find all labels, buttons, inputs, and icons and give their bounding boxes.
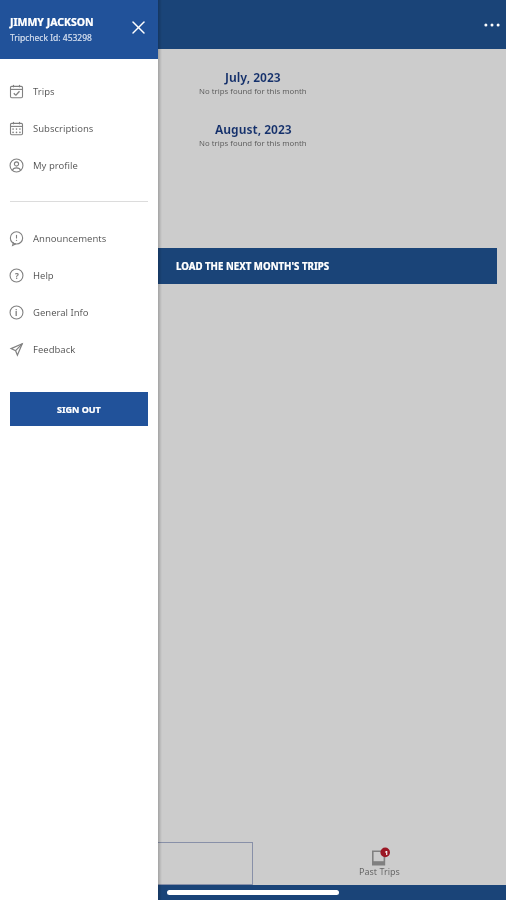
staticText: Trips [33,85,55,98]
staticText: General Info [33,306,89,319]
button[interactable]: Announcements [0,220,158,257]
staticText: July, 2023 [225,69,281,85]
button[interactable]: Trips [0,842,253,885]
button[interactable]: Feedback [0,331,158,368]
staticText: LOAD THE NEXT MONTH'S TRIPS [176,260,330,273]
button[interactable]: ? [0,257,158,294]
button[interactable]: Close drawer [126,15,150,39]
staticText: 1 [385,850,388,857]
button[interactable]: Trips [0,73,158,110]
button[interactable]: i [0,294,158,331]
staticText: Feedback [33,343,76,356]
staticText: JIMMY JACKSON [10,15,94,29]
staticText: Subscriptions [33,122,94,135]
button[interactable]: LOAD THE NEXT MONTH'S TRIPS [9,248,497,284]
staticText: Help [33,269,54,282]
staticText: Past Trips [359,865,400,877]
button[interactable]: More options [480,13,504,37]
staticText: SIGN OUT [57,403,101,415]
button[interactable]: My profile [0,147,158,184]
staticText: Announcements [33,232,107,245]
staticText: No trips found for this month [199,86,307,97]
staticText: i [15,307,18,318]
staticText: ? [15,270,19,281]
button[interactable]: Subscriptions [0,110,158,147]
staticText: My profile [33,159,78,172]
staticText: Tripcheck Id: 453298 [10,32,92,44]
button[interactable]: 1 [253,842,506,885]
staticText: August, 2023 [215,121,292,137]
staticText: No trips found for this month [199,138,307,149]
button[interactable]: SIGN OUT [10,392,148,426]
